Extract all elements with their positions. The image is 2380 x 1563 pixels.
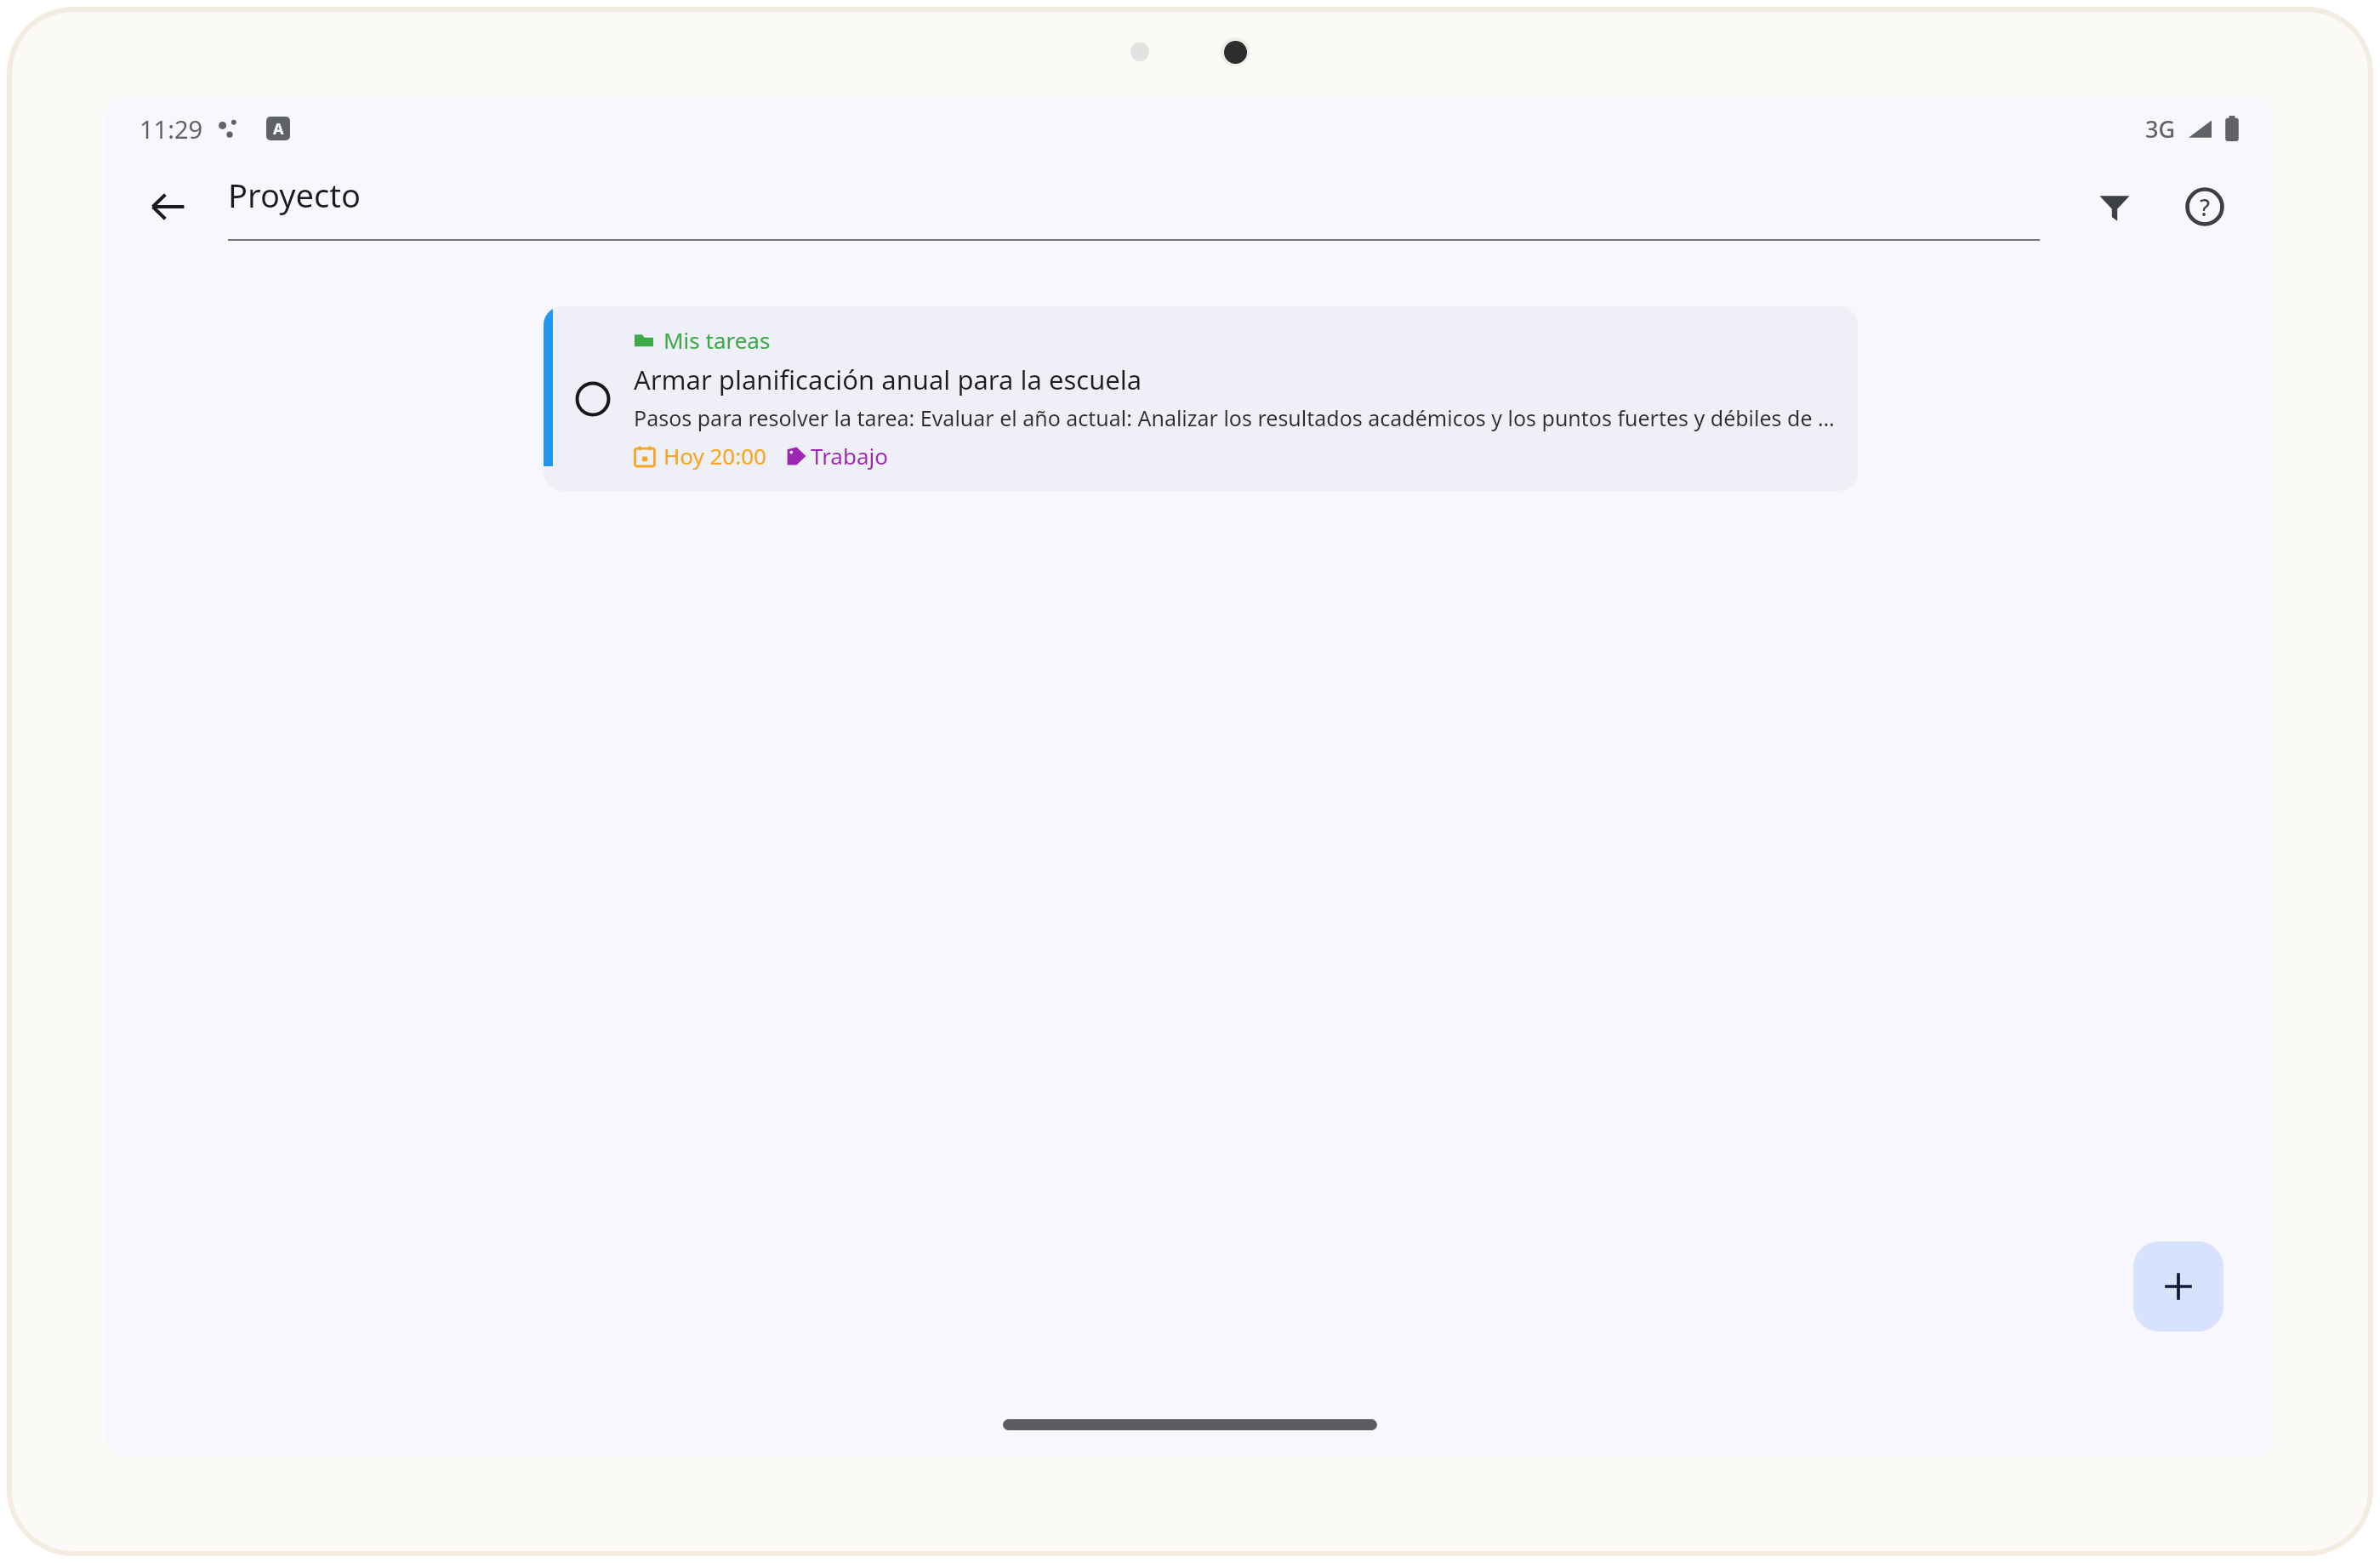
button[interactable]: Mark task complete — [564, 370, 622, 428]
staticText: 3G — [2145, 113, 2176, 145]
staticText: 11:29 — [139, 112, 203, 145]
staticText: Pasos para resolver la tarea: Evaluar el… — [634, 403, 1836, 432]
button[interactable]: Back — [133, 171, 204, 242]
staticText: A — [273, 118, 284, 140]
staticText: Armar planificación anual para la escuel… — [634, 362, 1142, 397]
staticText: Trabajo — [811, 441, 888, 471]
staticText: Proyecto — [228, 173, 361, 217]
staticText: ? — [2200, 191, 2211, 223]
button[interactable]: Mark task complete — [544, 306, 1858, 491]
staticText: Mis tareas — [663, 325, 771, 355]
staticText: Hoy 20:00 — [663, 441, 766, 471]
button[interactable]: Filter — [2079, 171, 2150, 242]
button[interactable]: Add task — [2133, 1241, 2223, 1332]
other: Add task — [2160, 1268, 2197, 1305]
button[interactable]: Help — [2169, 171, 2241, 242]
